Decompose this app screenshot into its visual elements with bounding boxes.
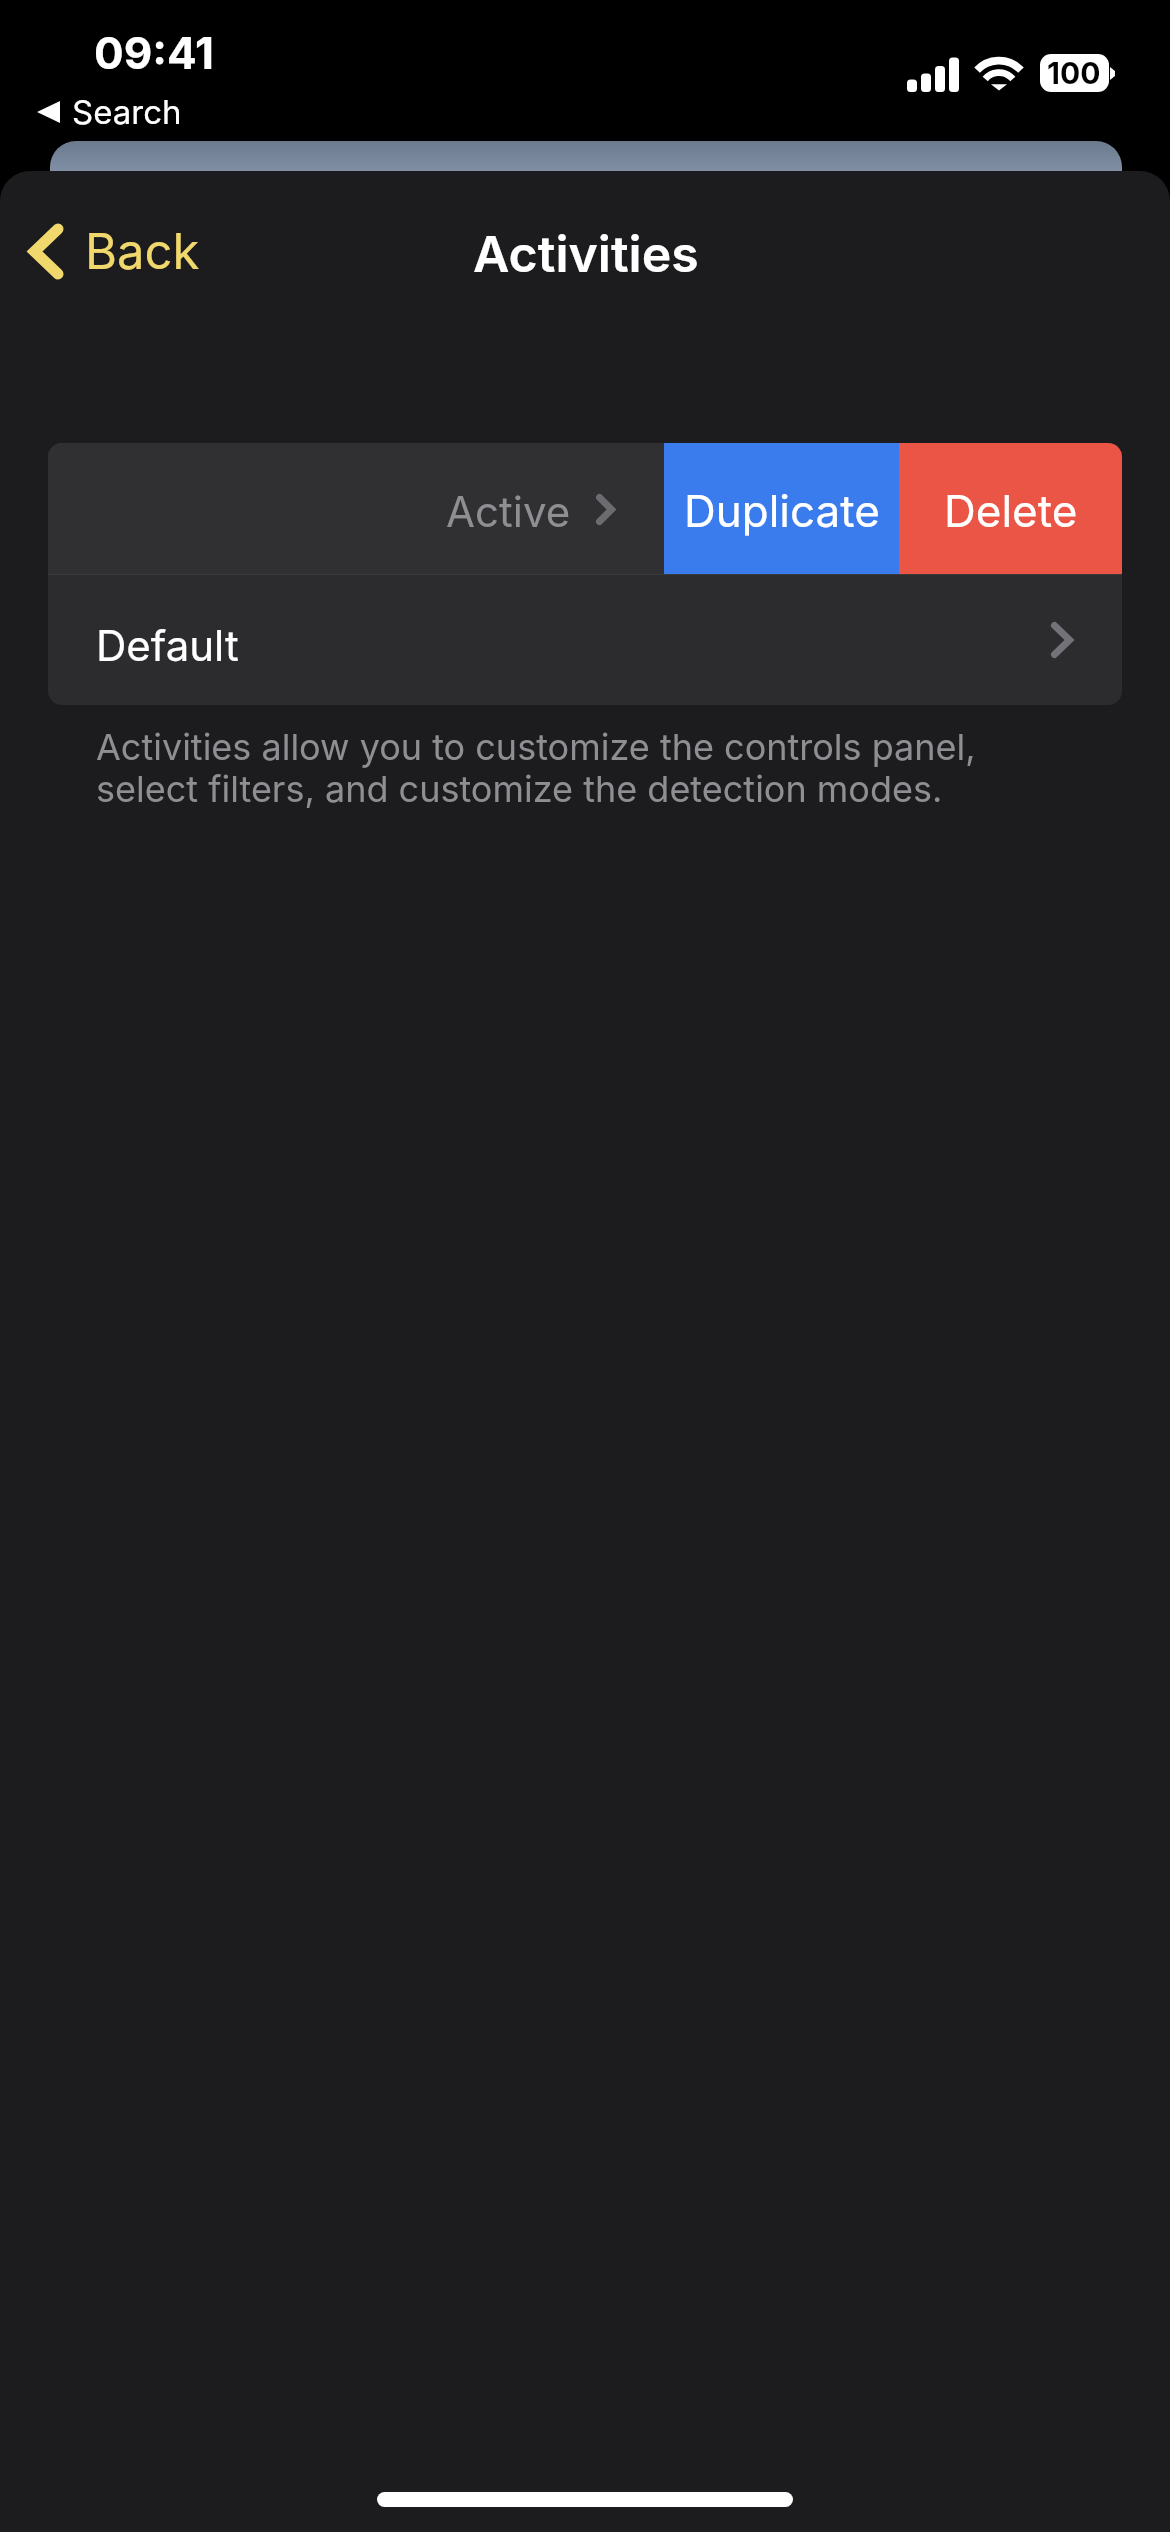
staticText: 100 xyxy=(1047,55,1101,91)
other: Wi-Fi xyxy=(974,54,1024,92)
staticText: Search xyxy=(72,92,182,132)
staticText: Active xyxy=(446,486,571,537)
button[interactable]: Search xyxy=(37,92,182,132)
staticText: Duplicate xyxy=(684,484,880,537)
button[interactable]: Duplicate xyxy=(664,443,899,574)
staticText: Activities allow you to customize the co… xyxy=(96,725,1026,810)
staticText: Activities xyxy=(473,224,699,284)
staticText: Delete xyxy=(944,484,1078,537)
staticText: Back xyxy=(85,222,200,281)
other: Battery 100 percent xyxy=(1040,54,1109,92)
button[interactable]: Default xyxy=(48,575,1122,705)
button[interactable]: Back xyxy=(23,221,200,282)
other: Cellular signal xyxy=(907,55,959,92)
button[interactable]: Delete xyxy=(899,443,1122,574)
staticText: 09:41 xyxy=(94,26,214,79)
button[interactable]: Active xyxy=(48,443,664,574)
staticText: Default xyxy=(96,620,239,671)
